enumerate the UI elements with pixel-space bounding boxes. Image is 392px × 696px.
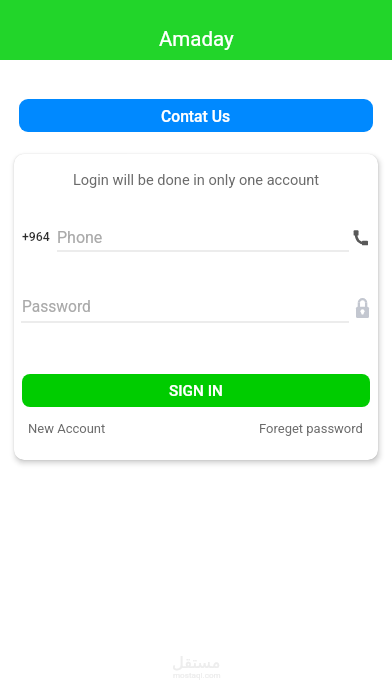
staticText: Foreget password xyxy=(259,421,363,436)
staticText: SIGN IN xyxy=(169,382,223,400)
button[interactable]: New Account xyxy=(28,421,106,436)
staticText: Password xyxy=(22,298,91,316)
button[interactable]: Foreget password xyxy=(259,421,363,436)
staticText: Contat Us xyxy=(161,107,231,125)
staticText: New Account xyxy=(28,421,106,436)
button[interactable]: Show password xyxy=(351,295,373,321)
staticText: مستقل xyxy=(172,653,221,672)
staticText: mostaql.com xyxy=(173,670,221,679)
staticText: +964 xyxy=(22,230,50,244)
button[interactable]: Call xyxy=(352,230,368,246)
staticText: Phone xyxy=(57,228,103,247)
button[interactable]: Contat Us xyxy=(19,99,373,132)
staticText: Login will be done in only one account xyxy=(14,171,378,188)
staticText: Amaday xyxy=(159,27,234,51)
button[interactable]: SIGN IN xyxy=(22,374,370,407)
